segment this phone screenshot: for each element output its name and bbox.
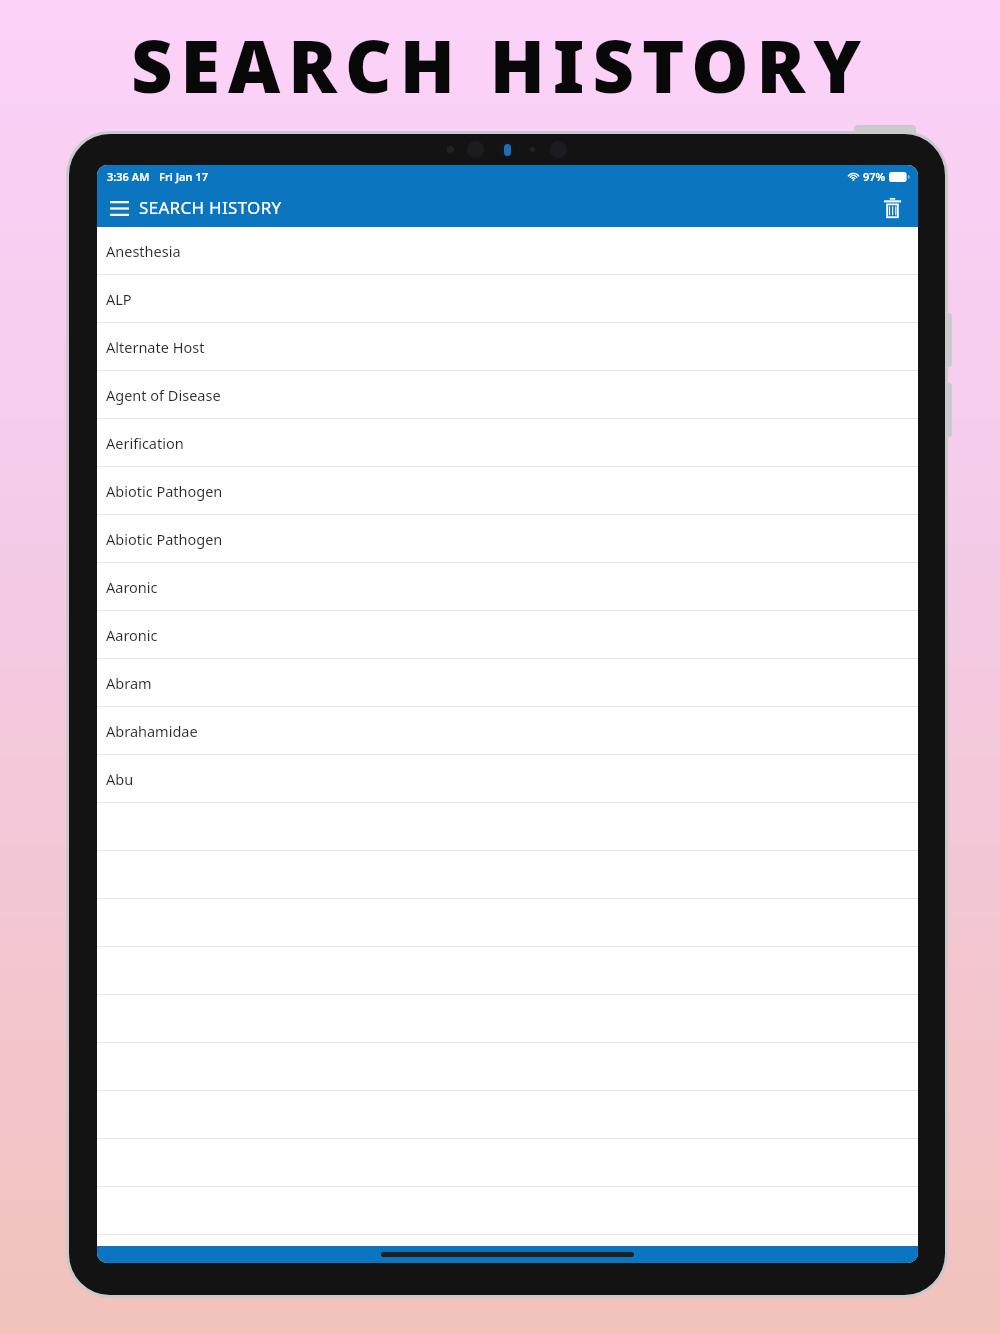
button[interactable]: Abiotic Pathogen	[97, 467, 918, 515]
button[interactable]: Clear search history	[875, 191, 909, 225]
staticText: Alternate Host	[106, 337, 205, 357]
staticText: 97%	[863, 169, 886, 184]
button[interactable]	[97, 1187, 918, 1235]
button[interactable]: Aerification	[97, 419, 918, 467]
staticText: Abiotic Pathogen	[106, 529, 223, 549]
staticText: Agent of Disease	[106, 385, 221, 405]
button[interactable]: Aaronic	[97, 563, 918, 611]
button[interactable]	[97, 1091, 918, 1139]
staticText: ALP	[106, 289, 132, 309]
button[interactable]: Abu	[97, 755, 918, 803]
staticText: Fri Jan 17	[159, 169, 208, 184]
staticText: Abrahamidae	[106, 721, 198, 741]
staticText: SEARCH HISTORY	[139, 196, 282, 219]
button[interactable]	[97, 851, 918, 899]
staticText: Abiotic Pathogen	[106, 481, 223, 501]
button[interactable]: Agent of Disease	[97, 371, 918, 419]
button[interactable]	[97, 1139, 918, 1187]
button[interactable]	[97, 1043, 918, 1091]
button[interactable]	[97, 899, 918, 947]
button[interactable]: ALP	[97, 275, 918, 323]
staticText: Aaronic	[106, 577, 158, 597]
button[interactable]	[97, 995, 918, 1043]
staticText: Abu	[106, 769, 134, 789]
staticText: Anesthesia	[106, 241, 181, 261]
staticText: Aaronic	[106, 625, 158, 645]
button[interactable]: Abiotic Pathogen	[97, 515, 918, 563]
staticText: 3:36 AM	[107, 169, 150, 184]
button[interactable]: Anesthesia	[97, 227, 918, 275]
button[interactable]: Abrahamidae	[97, 707, 918, 755]
button[interactable]	[97, 947, 918, 995]
button[interactable]: Alternate Host	[97, 323, 918, 371]
staticText: Abram	[106, 673, 152, 693]
button[interactable]	[97, 803, 918, 851]
button[interactable]: Open navigation menu	[102, 191, 136, 225]
staticText: Aerification	[106, 433, 184, 453]
staticText: SEARCH HISTORY	[131, 16, 870, 114]
button[interactable]: Aaronic	[97, 611, 918, 659]
button[interactable]: Abram	[97, 659, 918, 707]
